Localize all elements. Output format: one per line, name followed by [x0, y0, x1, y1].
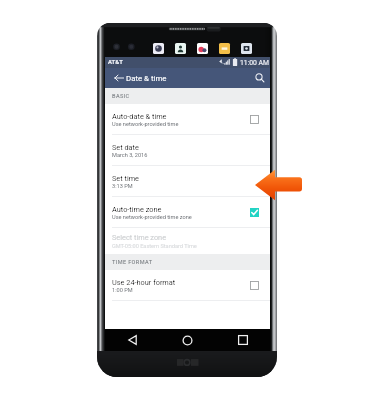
button[interactable]: Auto-date & time: [105, 104, 270, 135]
staticText: AT&T: [108, 59, 123, 66]
button[interactable]: Set time: [105, 166, 270, 197]
staticText: Use network-provided time zone: [112, 214, 192, 221]
button[interactable]: Back: [105, 329, 160, 351]
staticText: Auto-time zone: [112, 205, 162, 214]
staticText: BASIC: [112, 93, 130, 100]
button[interactable]: Recent apps: [215, 329, 270, 351]
staticText: GMT-05:00 Eastern Standard Time: [112, 243, 197, 250]
staticText: Use network-provided time: [112, 121, 179, 128]
staticText: Use 24-hour format: [112, 278, 176, 287]
button[interactable]: Auto-time zone: [105, 197, 270, 228]
staticText: Set date: [112, 143, 139, 152]
staticText: 3:13 PM: [112, 183, 133, 190]
button[interactable]: Set date: [105, 135, 270, 166]
staticText: March 3, 2016: [112, 152, 148, 159]
staticText: 11:00 AM: [240, 59, 269, 67]
staticText: Auto-date & time: [112, 112, 167, 121]
button[interactable]: Navigate up: [111, 68, 126, 88]
button[interactable]: Home: [160, 329, 215, 351]
staticText: TIME FORMAT: [112, 259, 153, 266]
staticText: Date & time: [126, 74, 167, 83]
button[interactable]: Select time zone: [105, 228, 270, 254]
button[interactable]: Search: [250, 68, 270, 88]
button[interactable]: Use 24-hour format: [105, 270, 270, 301]
staticText: Select time zone: [112, 233, 167, 242]
staticText: 1:00 PM: [112, 287, 133, 294]
staticText: Set time: [112, 174, 140, 183]
